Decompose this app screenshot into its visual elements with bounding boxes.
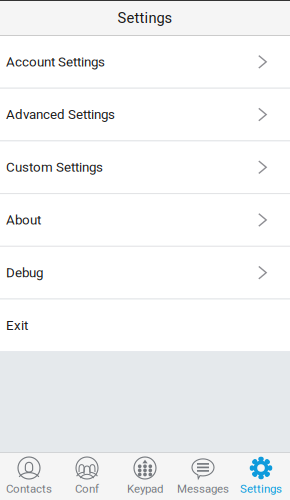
staticText: Settings — [240, 482, 282, 495]
button[interactable]: Messages — [174, 452, 232, 500]
staticText: Advanced Settings — [6, 107, 115, 122]
button[interactable]: Conf — [58, 452, 116, 500]
staticText: Custom Settings — [6, 159, 103, 175]
button[interactable]: Exit — [0, 299, 290, 351]
button[interactable]: Settings — [232, 452, 290, 500]
staticText: Contacts — [6, 482, 52, 495]
button[interactable]: Contacts — [0, 452, 58, 500]
staticText: Keypad — [127, 482, 163, 495]
staticText: Debug — [6, 265, 43, 280]
staticText: Settings — [117, 9, 172, 27]
staticText: About — [6, 212, 41, 228]
button[interactable]: Debug — [0, 247, 290, 298]
staticText: Conf — [75, 482, 99, 495]
button[interactable]: Keypad — [116, 452, 174, 500]
button[interactable]: Account Settings — [0, 36, 290, 88]
staticText: Exit — [6, 317, 28, 333]
button[interactable]: Advanced Settings — [0, 89, 290, 140]
staticText: Account Settings — [6, 54, 105, 70]
button[interactable]: About — [0, 194, 290, 246]
button[interactable]: Custom Settings — [0, 141, 290, 193]
staticText: Messages — [177, 482, 229, 495]
